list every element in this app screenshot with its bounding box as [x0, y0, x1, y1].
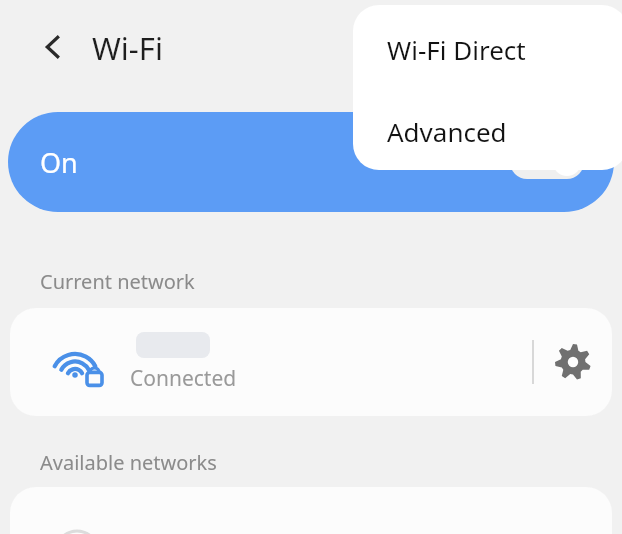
- button[interactable]: Back: [30, 24, 76, 70]
- staticText: Wi-Fi Direct: [387, 32, 526, 67]
- button[interactable]: Settings: [534, 308, 612, 416]
- staticText: Available networks: [40, 449, 217, 476]
- staticText: Current network: [40, 268, 195, 295]
- staticText: Connected: [130, 364, 237, 393]
- staticText: On: [40, 144, 78, 181]
- button[interactable]: Connected: [10, 308, 612, 416]
- button[interactable]: On: [8, 112, 614, 212]
- button[interactable]: Advanced: [353, 93, 622, 170]
- staticText: Wi-Fi: [92, 27, 163, 69]
- button[interactable]: Wi-Fi Direct: [353, 5, 622, 93]
- staticText: Advanced: [387, 114, 507, 149]
